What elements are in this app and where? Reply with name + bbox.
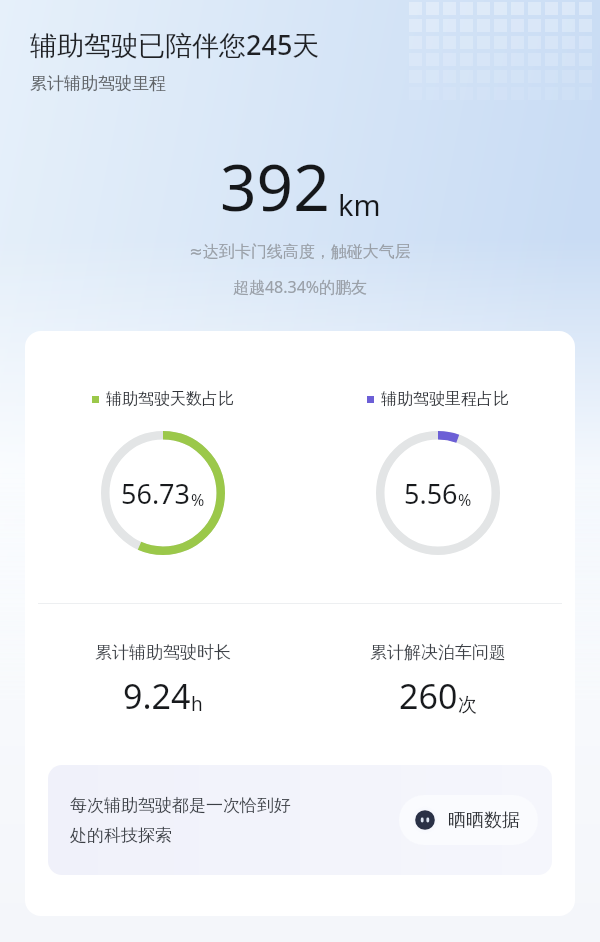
staticText: 处的科技探索 bbox=[70, 825, 172, 846]
staticText: 辅助驾驶已陪伴您245天 bbox=[30, 26, 320, 63]
button[interactable]: 晒晒数据 bbox=[399, 795, 538, 845]
staticText: km bbox=[338, 185, 381, 224]
staticText: 辅助驾驶里程占比 bbox=[381, 389, 509, 409]
staticText: h bbox=[191, 691, 203, 717]
staticText: 56.73 bbox=[121, 475, 191, 512]
staticText: 5.56 bbox=[404, 475, 458, 512]
staticText: 每次辅助驾驶都是一次恰到好 bbox=[70, 795, 291, 816]
staticText: % bbox=[191, 489, 205, 511]
staticText: ≈达到卡门线高度，触碰大气层 bbox=[0, 242, 600, 262]
staticText: 累计解决泊车问题 bbox=[370, 642, 506, 663]
staticText: 9.24 bbox=[123, 673, 191, 719]
staticText: 次 bbox=[458, 693, 477, 717]
staticText: 晒晒数据 bbox=[448, 809, 520, 832]
staticText: 260 bbox=[399, 673, 458, 719]
staticText: 392 bbox=[220, 143, 330, 230]
staticText: 超越48.34%的鹏友 bbox=[0, 276, 600, 298]
staticText: 累计辅助驾驶时长 bbox=[95, 642, 231, 663]
staticText: 辅助驾驶天数占比 bbox=[106, 389, 234, 409]
staticText: 累计辅助驾驶里程 bbox=[30, 73, 166, 94]
staticText: % bbox=[458, 489, 472, 511]
